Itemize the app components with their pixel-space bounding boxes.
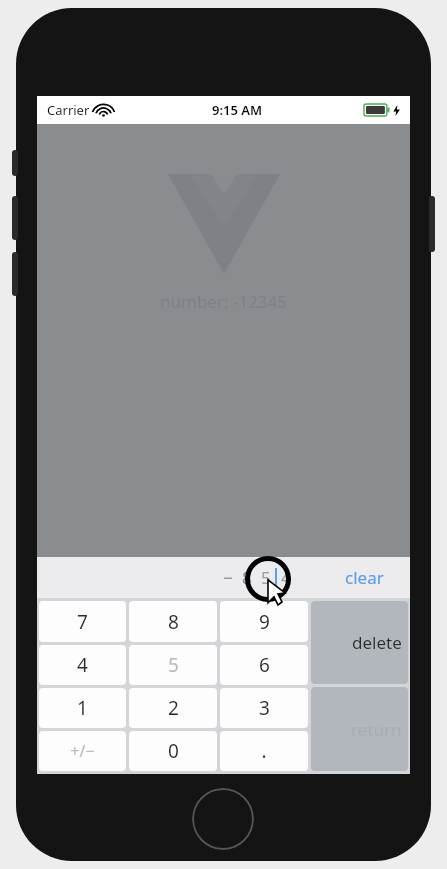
- button[interactable]: 2: [129, 688, 217, 728]
- staticText: −: [223, 566, 233, 589]
- staticText: 4: [77, 652, 88, 678]
- staticText: 8: [168, 609, 179, 635]
- staticText: number: -12345: [160, 290, 288, 313]
- staticText: return: [351, 718, 402, 741]
- staticText: 5: [261, 566, 271, 589]
- button[interactable]: Home: [192, 788, 254, 850]
- button[interactable]: 8: [129, 601, 217, 642]
- staticText: 3: [259, 695, 270, 721]
- staticText: 5: [168, 652, 179, 678]
- staticText: 6: [259, 652, 270, 678]
- button[interactable]: 3: [220, 688, 308, 728]
- staticText: delete: [352, 631, 402, 654]
- button[interactable]: delete: [311, 601, 408, 684]
- staticText: +/−: [70, 740, 95, 762]
- staticText: 8: [242, 566, 252, 589]
- staticText: 9: [259, 609, 270, 635]
- staticText: 9:15 AM: [212, 101, 263, 119]
- button[interactable]: 7: [39, 601, 126, 642]
- staticText: 0: [168, 738, 179, 764]
- staticText: 4: [281, 566, 291, 589]
- staticText: 1: [77, 695, 88, 721]
- staticText: 7: [77, 609, 88, 635]
- button[interactable]: 9: [220, 601, 308, 642]
- button[interactable]: 4: [39, 645, 126, 685]
- button[interactable]: 1: [39, 688, 126, 728]
- staticText: .: [261, 738, 267, 764]
- staticText: clear: [345, 566, 384, 589]
- button[interactable]: clear: [337, 560, 392, 595]
- button[interactable]: 6: [220, 645, 308, 685]
- button[interactable]: +/−: [39, 731, 126, 771]
- staticText: Carrier: [47, 101, 90, 119]
- button[interactable]: .: [220, 731, 308, 771]
- button[interactable]: 0: [129, 731, 217, 771]
- button[interactable]: 5: [129, 645, 217, 685]
- staticText: 2: [168, 695, 179, 721]
